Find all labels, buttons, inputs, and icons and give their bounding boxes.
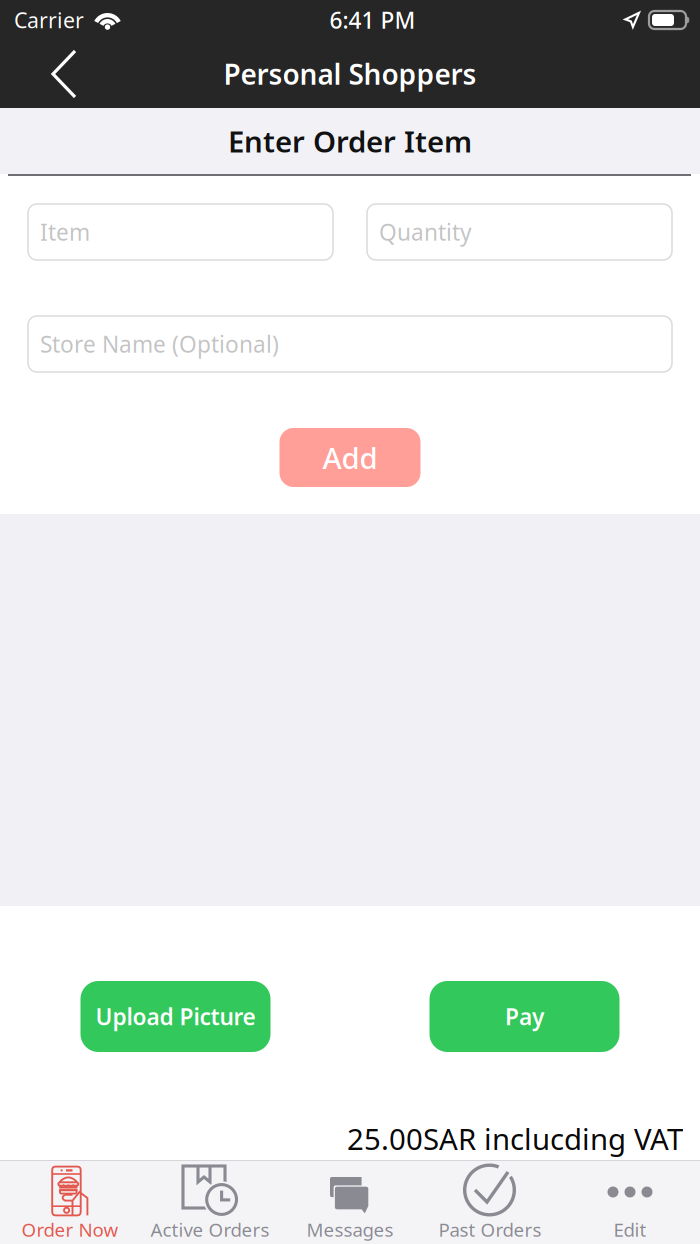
button[interactable]: Edit (560, 1161, 700, 1244)
staticText: Pay (505, 1001, 544, 1031)
staticText: 6:41 PM (329, 5, 415, 35)
staticText: Quantity (379, 217, 472, 247)
staticText: Item (40, 217, 90, 247)
button[interactable]: Pay (429, 981, 619, 1052)
staticText: Messages (306, 1217, 393, 1242)
button[interactable]: Past Orders (420, 1161, 560, 1244)
button[interactable]: Upload Picture (80, 981, 270, 1052)
button[interactable]: Active Orders (140, 1161, 280, 1244)
button[interactable]: Store Name (Optional) (28, 316, 672, 372)
staticText: 25.00SAR inclucding VAT (347, 1119, 683, 1158)
button[interactable]: Order Now (0, 1161, 140, 1244)
button[interactable]: Messages (280, 1161, 420, 1244)
staticText: Order Now (21, 1217, 118, 1242)
staticText: Edit (613, 1217, 646, 1242)
staticText: Upload Picture (95, 1001, 255, 1031)
button[interactable]: Back (0, 40, 99, 108)
button[interactable]: Add (279, 428, 420, 487)
staticText: Add (322, 438, 377, 477)
staticText: Enter Order Item (228, 121, 472, 160)
staticText: Active Orders (150, 1217, 269, 1242)
staticText: Store Name (Optional) (40, 329, 279, 359)
staticText: Personal Shoppers (223, 55, 476, 93)
button[interactable]: Quantity (367, 204, 672, 260)
button[interactable]: Item (28, 204, 333, 260)
staticText: Carrier (14, 6, 84, 34)
staticText: Past Orders (438, 1217, 541, 1242)
